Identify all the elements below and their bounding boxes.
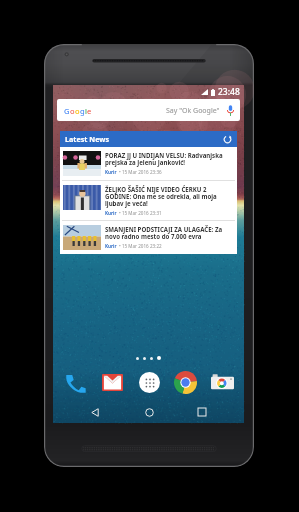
- staticText: Say "Ok Google": [166, 106, 220, 116]
- staticText: • 15 Mar 2016 23:36: [119, 169, 162, 175]
- button[interactable]: ŽELJKO ŠAŠIĆ NIJE VIDEO ĆERKU 2 GODINE: …: [63, 185, 234, 216]
- staticText: ŽELJKO ŠAŠIĆ NIJE VIDEO ĆERKU 2 GODINE: …: [105, 185, 234, 208]
- other: Refresh: [223, 135, 232, 144]
- staticText: Kurir: [105, 169, 117, 175]
- staticText: Kurir: [105, 210, 117, 216]
- button[interactable]: G: [57, 99, 240, 121]
- staticText: • 15 Mar 2016 23:22: [119, 243, 162, 249]
- button[interactable]: PORAZ JJ U INDIJAN VELSU: Radvanjska pre…: [63, 151, 234, 176]
- staticText: o: [75, 106, 80, 116]
- staticText: G: [64, 106, 70, 116]
- button[interactable]: Phone: [63, 370, 87, 394]
- staticText: l: [85, 106, 87, 116]
- button[interactable]: All apps: [137, 370, 161, 394]
- button[interactable]: Gmail: [100, 370, 124, 394]
- staticText: Latest News: [65, 134, 110, 144]
- button[interactable]: Camera: [210, 370, 234, 394]
- button[interactable]: Recents: [191, 401, 213, 423]
- button[interactable]: Chrome: [173, 370, 197, 394]
- staticText: 23:48: [218, 86, 240, 98]
- button[interactable]: Back: [84, 401, 106, 423]
- staticText: e: [87, 106, 92, 116]
- staticText: Kurir: [105, 243, 117, 249]
- staticText: SMANJENI PODSTICAJI ZA ULAGAČE: Za novo …: [105, 225, 234, 241]
- staticText: • 15 Mar 2016 23:31: [119, 210, 162, 216]
- other: Voice search: [227, 105, 234, 116]
- button[interactable]: Latest News: [65, 131, 232, 147]
- staticText: PORAZ JJ U INDIJAN VELSU: Radvanjska pre…: [105, 151, 234, 167]
- staticText: g: [80, 106, 85, 116]
- button[interactable]: Home: [138, 401, 160, 423]
- button[interactable]: SMANJENI PODSTICAJI ZA ULAGAČE: Za novo …: [63, 225, 234, 250]
- staticText: o: [70, 106, 75, 116]
